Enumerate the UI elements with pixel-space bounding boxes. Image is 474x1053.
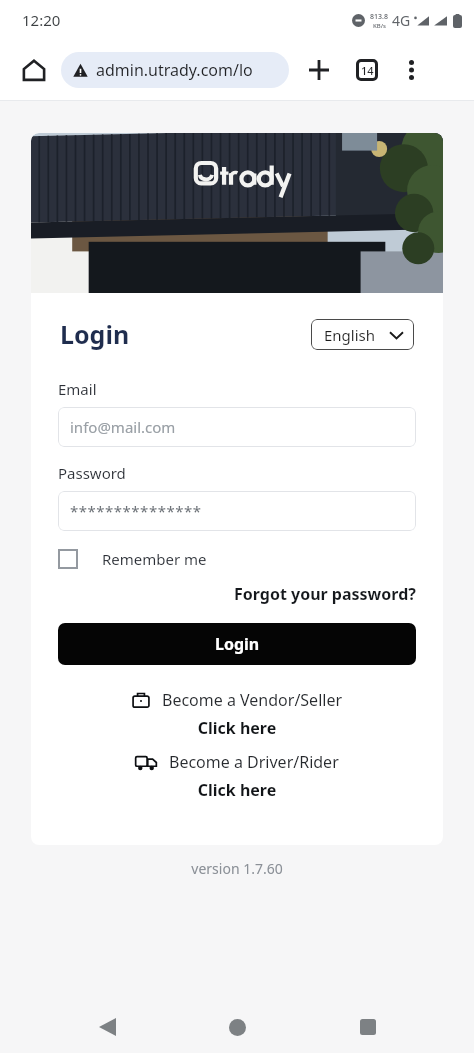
staticText: info@mail.com bbox=[70, 417, 176, 437]
button[interactable]: Tabs bbox=[347, 50, 387, 90]
button[interactable]: Become a Vendor/Seller bbox=[58, 689, 416, 711]
staticText: 4G bbox=[392, 11, 411, 30]
staticText: English bbox=[324, 325, 376, 345]
staticText: *************** bbox=[70, 501, 202, 521]
staticText: Email bbox=[58, 379, 97, 399]
button[interactable]: More options bbox=[391, 50, 431, 90]
button[interactable]: Home bbox=[14, 50, 54, 90]
staticText: admin.utrady.com/lo bbox=[96, 59, 253, 81]
button[interactable]: English bbox=[311, 319, 414, 350]
button[interactable]: *************** bbox=[58, 491, 416, 531]
button[interactable]: Home bbox=[213, 1003, 261, 1051]
staticText: Password bbox=[58, 463, 126, 483]
button[interactable]: Remember me bbox=[58, 549, 207, 569]
button[interactable]: Recent apps bbox=[344, 1003, 392, 1051]
button[interactable]: Click here bbox=[58, 779, 416, 801]
button[interactable]: Become a Driver/Rider bbox=[58, 751, 416, 773]
button[interactable]: Forgot your password? bbox=[234, 583, 416, 605]
staticText: KB/s bbox=[373, 22, 386, 30]
button[interactable]: Back bbox=[83, 1003, 131, 1051]
button[interactable]: Login bbox=[58, 623, 416, 665]
staticText: 14 bbox=[361, 63, 374, 78]
staticText: version 1.7.60 bbox=[0, 859, 474, 878]
staticText: Remember me bbox=[102, 549, 207, 569]
staticText: Become a Vendor/Seller bbox=[162, 689, 343, 711]
staticText: Login bbox=[60, 317, 130, 351]
staticText: 12:20 bbox=[22, 10, 61, 30]
staticText: Become a Driver/Rider bbox=[169, 751, 339, 773]
staticText: 813.8 bbox=[370, 12, 388, 22]
button[interactable]: info@mail.com bbox=[58, 407, 416, 447]
staticText: Login bbox=[215, 633, 260, 655]
button[interactable]: admin.utrady.com/lo bbox=[61, 52, 289, 88]
button[interactable]: Click here bbox=[58, 717, 416, 739]
button[interactable]: New tab bbox=[299, 50, 339, 90]
